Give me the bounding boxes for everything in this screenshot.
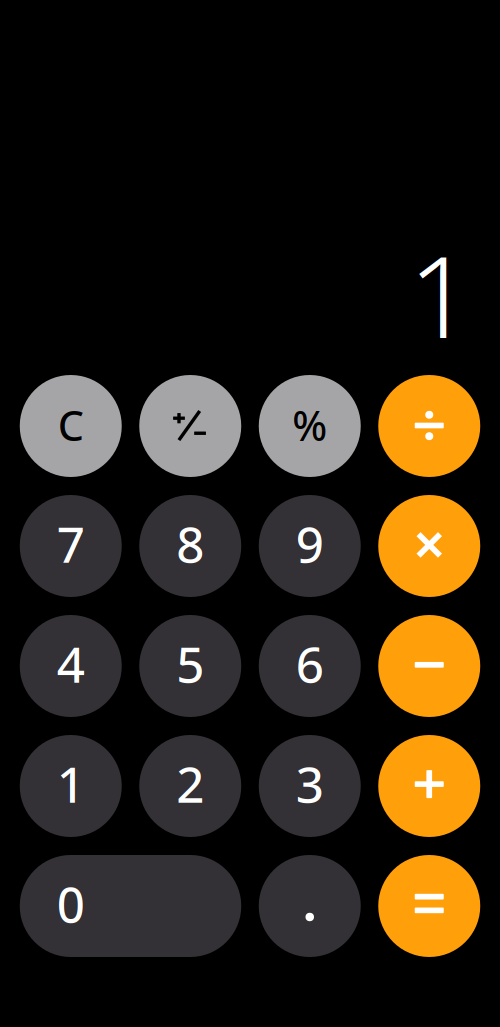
button[interactable]: 2: [139, 735, 241, 837]
staticText: 5: [176, 630, 204, 697]
button[interactable]: Equals: [378, 855, 480, 957]
button[interactable]: 4: [20, 615, 122, 717]
staticText: 6: [296, 630, 324, 697]
button[interactable]: C: [20, 375, 122, 477]
button[interactable]: Decimal point: [259, 855, 361, 957]
button[interactable]: Plus: [378, 735, 480, 837]
button[interactable]: Plus Minus: [139, 375, 241, 477]
button[interactable]: 7: [20, 495, 122, 597]
staticText: 3: [296, 750, 324, 817]
staticText: C: [58, 397, 84, 453]
staticText: 9: [296, 510, 324, 577]
staticText: 0: [57, 870, 85, 937]
staticText: 4: [57, 630, 85, 697]
staticText: %: [292, 397, 327, 453]
staticText: 8: [176, 510, 204, 577]
button[interactable]: Divide: [378, 375, 480, 477]
button[interactable]: Multiply: [378, 495, 480, 597]
staticText: 2: [176, 750, 204, 817]
button[interactable]: 8: [139, 495, 241, 597]
button[interactable]: 1: [20, 735, 122, 837]
button[interactable]: 0: [20, 855, 241, 957]
button[interactable]: 6: [259, 615, 361, 717]
staticText: 7: [57, 510, 85, 577]
button[interactable]: 3: [259, 735, 361, 837]
button[interactable]: %: [259, 375, 361, 477]
staticText: 1: [408, 220, 472, 369]
button[interactable]: Minus: [378, 615, 480, 717]
staticText: 1: [57, 750, 85, 817]
button[interactable]: 5: [139, 615, 241, 717]
button[interactable]: 9: [259, 495, 361, 597]
